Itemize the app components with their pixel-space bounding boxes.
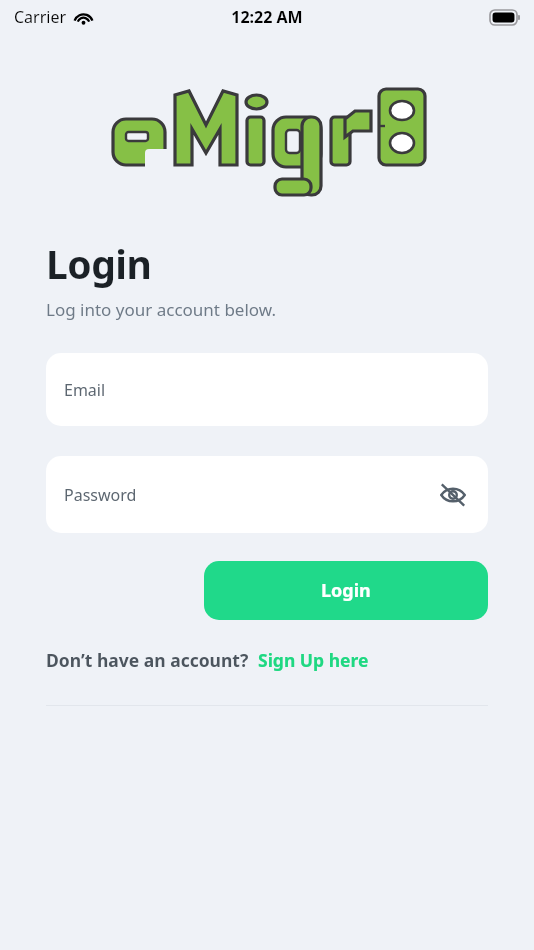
button[interactable]: Password: [46, 456, 488, 533]
staticText: Password: [64, 484, 137, 506]
staticText: Login: [321, 578, 371, 603]
staticText: Sign Up here: [258, 648, 369, 672]
staticText: Login: [46, 237, 152, 290]
staticText: Email: [64, 379, 106, 401]
staticText: Carrier: [14, 6, 67, 28]
button[interactable]: Login: [204, 561, 488, 620]
button[interactable]: Sign Up here: [258, 648, 369, 672]
button[interactable]: Show password: [436, 478, 470, 512]
staticText: Log into your account below.: [46, 298, 277, 321]
staticText: 12:22 AM: [231, 6, 303, 28]
button[interactable]: Email: [46, 353, 488, 426]
staticText: Don’t have an account?: [46, 648, 249, 672]
